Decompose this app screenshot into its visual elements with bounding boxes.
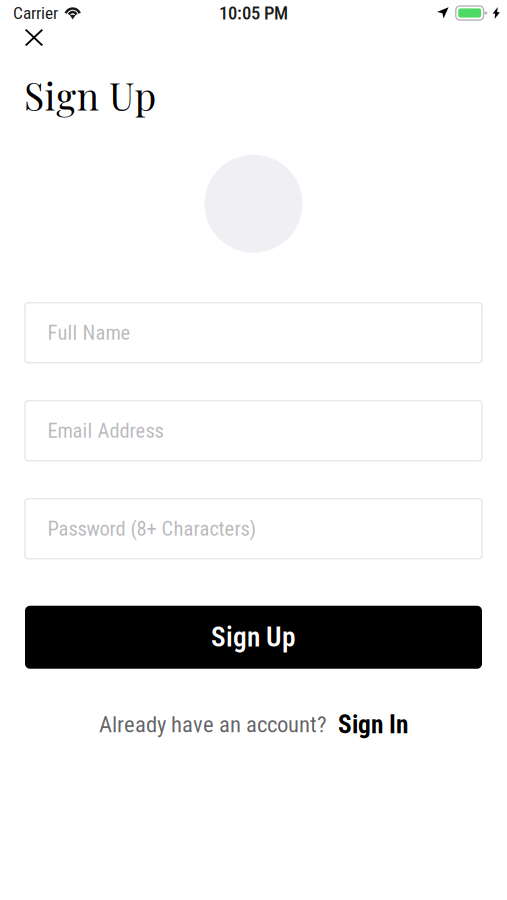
button[interactable]: Close: [0, 26, 61, 52]
button[interactable]: Sign Up: [25, 606, 482, 669]
staticText: Email Address: [47, 419, 163, 443]
staticText: Password (8+ Characters): [47, 517, 256, 541]
staticText: Sign In: [338, 710, 408, 739]
button[interactable]: Password (8+ Characters): [25, 499, 482, 559]
staticText: Sign Up: [24, 70, 157, 120]
staticText: 10:05 PM: [219, 2, 288, 24]
button[interactable]: Email Address: [25, 401, 482, 461]
staticText: Carrier: [13, 3, 58, 23]
button[interactable]: Full Name: [25, 303, 482, 363]
button[interactable]: Sign In: [338, 710, 408, 739]
button[interactable]: Add profile photo: [204, 155, 302, 253]
staticText: Full Name: [47, 321, 130, 345]
staticText: Sign Up: [211, 621, 296, 653]
staticText: Already have an account?: [99, 711, 327, 738]
